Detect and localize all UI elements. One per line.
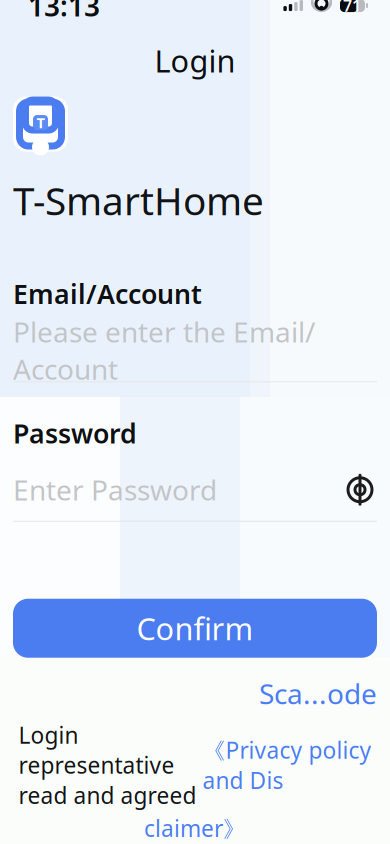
staticText: Password xyxy=(13,415,137,451)
staticText: Please enter the Email/Account xyxy=(13,313,315,387)
staticText: Enter Password xyxy=(13,471,217,508)
staticText: Login xyxy=(154,40,235,81)
staticText: 13:13 xyxy=(28,0,100,24)
staticText: 《Privacy policy and Dis xyxy=(202,735,371,795)
staticText: Confirm xyxy=(136,608,253,649)
staticText: 71 xyxy=(343,0,361,16)
button[interactable]: Confirm xyxy=(13,599,377,658)
button[interactable]: Show password xyxy=(343,473,377,507)
staticText: Email/Account xyxy=(13,276,202,311)
staticText: T-SmartHome xyxy=(13,175,264,226)
button[interactable]: 《Privacy policy and Dis xyxy=(202,735,371,795)
button[interactable]: Sca...ode xyxy=(259,675,377,712)
button[interactable]: claimer》 xyxy=(144,813,246,843)
staticText: Login representative read and agreed xyxy=(18,720,202,810)
staticText: T xyxy=(36,113,44,132)
staticText: claimer》 xyxy=(144,813,246,843)
staticText: Sca...ode xyxy=(259,675,377,712)
